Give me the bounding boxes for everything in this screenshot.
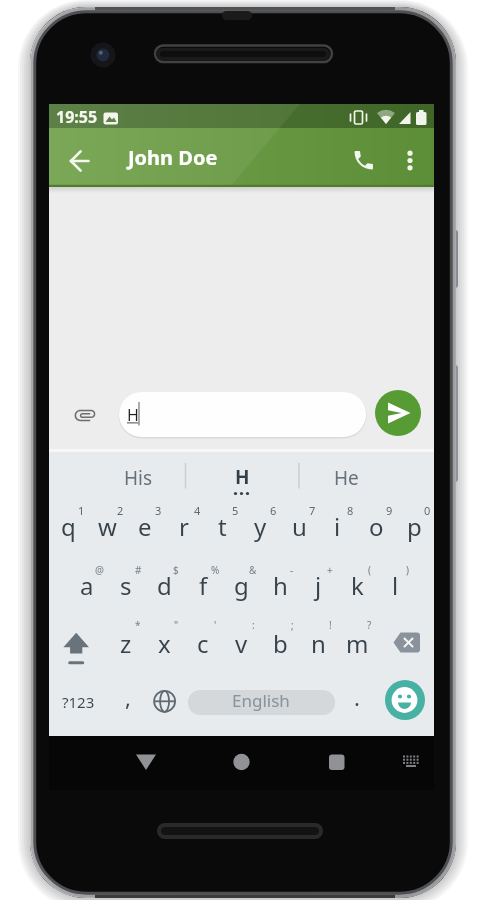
- staticText: 4: [194, 503, 201, 518]
- button[interactable]: [389, 626, 425, 660]
- button[interactable]: [49, 498, 87, 557]
- staticText: b: [273, 627, 288, 660]
- staticText: o: [369, 510, 384, 543]
- button[interactable]: [107, 557, 145, 616]
- staticText: H: [235, 464, 250, 490]
- button[interactable]: [337, 616, 375, 675]
- staticText: @: [95, 563, 104, 577]
- button[interactable]: [68, 398, 102, 432]
- button[interactable]: [186, 452, 300, 496]
- staticText: z: [120, 627, 132, 660]
- staticText: &: [249, 563, 257, 577]
- staticText: ,: [125, 682, 131, 712]
- staticText: He: [334, 465, 359, 491]
- staticText: H: [127, 404, 139, 426]
- button[interactable]: [299, 452, 434, 496]
- button[interactable]: [188, 690, 335, 715]
- button[interactable]: [164, 498, 202, 557]
- button[interactable]: [375, 390, 421, 436]
- staticText: %: [211, 563, 220, 577]
- staticText: h: [273, 569, 288, 602]
- staticText: (: [368, 563, 371, 577]
- staticText: ): [406, 563, 409, 577]
- button[interactable]: [318, 498, 356, 557]
- staticText: $: [173, 563, 179, 577]
- button[interactable]: [148, 685, 181, 718]
- button[interactable]: [357, 498, 395, 557]
- staticText: a: [80, 569, 94, 602]
- staticText: .: [354, 682, 360, 712]
- button[interactable]: [145, 557, 183, 616]
- staticText: English: [232, 689, 290, 712]
- staticText: l: [392, 569, 399, 602]
- staticText: ;: [291, 618, 294, 632]
- button[interactable]: [260, 557, 298, 616]
- staticText: 5: [232, 503, 239, 518]
- staticText: John Doe: [128, 144, 218, 171]
- staticText: v: [235, 627, 248, 660]
- staticText: x: [158, 627, 171, 660]
- button[interactable]: [128, 744, 164, 780]
- staticText: q: [61, 510, 76, 543]
- staticText: 2: [117, 503, 124, 518]
- staticText: ?123: [62, 692, 95, 712]
- staticText: His: [124, 465, 153, 491]
- button[interactable]: [203, 498, 241, 557]
- button[interactable]: [280, 498, 318, 557]
- button[interactable]: [376, 557, 414, 616]
- button[interactable]: [299, 557, 337, 616]
- staticText: :: [252, 618, 255, 632]
- button[interactable]: [396, 144, 426, 178]
- button[interactable]: [58, 628, 94, 664]
- staticText: 8: [347, 503, 354, 518]
- staticText: ": [174, 618, 179, 632]
- staticText: u: [292, 510, 307, 543]
- button[interactable]: [385, 680, 425, 720]
- button[interactable]: [126, 498, 164, 557]
- button[interactable]: [119, 392, 366, 437]
- staticText: r: [179, 510, 189, 543]
- button[interactable]: [223, 744, 259, 780]
- button[interactable]: [184, 557, 222, 616]
- button[interactable]: [222, 616, 260, 675]
- button[interactable]: [350, 147, 378, 175]
- button[interactable]: [110, 147, 235, 176]
- button[interactable]: [337, 557, 375, 616]
- button[interactable]: [49, 675, 106, 736]
- staticText: *: [135, 618, 141, 632]
- staticText: 6: [270, 503, 277, 518]
- button[interactable]: [222, 557, 260, 616]
- staticText: g: [234, 569, 249, 602]
- button[interactable]: [184, 616, 222, 675]
- staticText: ': [214, 618, 217, 632]
- staticText: 0: [424, 503, 431, 518]
- button[interactable]: [68, 557, 106, 616]
- button[interactable]: [107, 616, 145, 675]
- button[interactable]: [299, 616, 337, 675]
- staticText: e: [138, 510, 152, 543]
- staticText: 19:55: [56, 106, 98, 128]
- button[interactable]: [106, 675, 146, 736]
- button[interactable]: [58, 144, 94, 178]
- staticText: !: [329, 618, 332, 632]
- button[interactable]: [394, 746, 428, 776]
- button[interactable]: [395, 498, 433, 557]
- button[interactable]: [49, 452, 186, 496]
- staticText: 7: [309, 503, 316, 518]
- staticText: j: [315, 569, 322, 602]
- button[interactable]: [87, 498, 125, 557]
- staticText: n: [311, 627, 326, 660]
- staticText: i: [334, 510, 341, 543]
- staticText: +: [327, 563, 333, 577]
- staticText: #: [135, 563, 142, 577]
- button[interactable]: [145, 616, 183, 675]
- button[interactable]: [260, 616, 298, 675]
- button[interactable]: [337, 675, 375, 736]
- button[interactable]: [318, 744, 354, 780]
- staticText: w: [98, 510, 117, 543]
- staticText: p: [407, 510, 422, 543]
- staticText: k: [351, 569, 364, 602]
- button[interactable]: [241, 498, 279, 557]
- staticText: 9: [386, 503, 393, 518]
- staticText: t: [218, 510, 227, 543]
